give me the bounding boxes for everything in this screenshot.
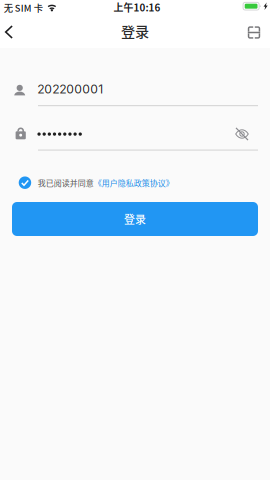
staticText: 上午10:16 xyxy=(113,0,160,14)
staticText: 登录 xyxy=(121,21,149,41)
staticText: 登录 xyxy=(124,211,146,227)
staticText: 无 SIM 卡 xyxy=(4,1,43,14)
staticText: 202200001 xyxy=(37,82,103,96)
button[interactable]: 显示密码 xyxy=(233,125,251,143)
button[interactable]: 扫一扫 xyxy=(238,15,270,43)
staticText: 我已阅读并同意 xyxy=(38,177,94,188)
button[interactable]: 返回 xyxy=(0,18,25,46)
staticText: 《用户隐私政策协议》 xyxy=(94,177,174,188)
button[interactable]: 登录 xyxy=(12,202,258,236)
button[interactable]: 我已阅读并同意 xyxy=(19,171,249,194)
